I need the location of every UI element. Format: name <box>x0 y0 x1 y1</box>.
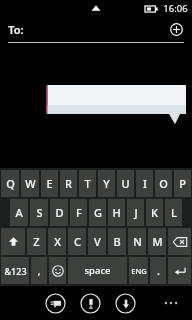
staticText: Z <box>33 234 40 249</box>
button[interactable]: S <box>30 199 48 226</box>
staticText: N <box>133 234 142 249</box>
staticText: L <box>171 205 177 220</box>
staticText: G <box>94 205 102 220</box>
staticText: H <box>112 205 121 220</box>
button[interactable]: Z <box>27 228 46 255</box>
staticText: I <box>143 176 147 191</box>
button[interactable]: Backspace <box>168 228 191 255</box>
staticText: P <box>179 176 186 191</box>
staticText: C <box>74 234 81 249</box>
staticText: S <box>36 205 43 220</box>
button[interactable]: Emoji <box>49 257 66 284</box>
button[interactable]: A <box>10 199 28 226</box>
button[interactable]: , <box>31 257 47 284</box>
button[interactable]: D <box>50 199 68 226</box>
staticText: V <box>94 234 101 249</box>
button[interactable]: W <box>21 170 39 197</box>
button[interactable]: V <box>88 228 106 255</box>
button[interactable]: Shift <box>1 228 25 255</box>
button[interactable] <box>46 85 186 125</box>
button[interactable]: &123 <box>1 257 29 284</box>
button[interactable]: Q <box>1 170 19 197</box>
staticText: ENG <box>131 266 147 276</box>
button[interactable]: C <box>68 228 86 255</box>
button[interactable]: I <box>136 170 153 197</box>
staticText: . <box>157 263 160 278</box>
staticText: O <box>159 176 168 191</box>
button[interactable]: F <box>70 199 87 226</box>
staticText: F <box>76 205 82 220</box>
button[interactable]: Add recipient <box>166 19 186 39</box>
button[interactable]: R <box>60 170 77 197</box>
button[interactable]: E <box>41 170 58 197</box>
button[interactable]: Enter <box>168 257 191 284</box>
button[interactable]: To: <box>0 16 192 42</box>
staticText: R <box>65 176 72 191</box>
staticText: space <box>84 264 111 277</box>
staticText: To: <box>8 22 24 37</box>
button[interactable]: O <box>155 170 172 197</box>
button[interactable]: M <box>148 228 166 255</box>
staticText: U <box>121 176 130 191</box>
button[interactable]: L <box>165 199 182 226</box>
button[interactable]: Y <box>98 170 115 197</box>
staticText: J <box>134 205 138 220</box>
button[interactable]: K <box>146 199 163 226</box>
button[interactable]: B <box>108 228 126 255</box>
staticText: M <box>152 234 163 249</box>
button[interactable]: Send <box>80 293 101 314</box>
button[interactable]: space <box>68 257 127 284</box>
button[interactable]: Attach <box>45 293 66 314</box>
staticText: Q <box>6 176 15 191</box>
staticText: W <box>25 176 36 191</box>
button[interactable]: X <box>48 228 66 255</box>
button[interactable]: J <box>127 199 144 226</box>
button[interactable]: H <box>108 199 125 226</box>
button[interactable]: . <box>150 257 166 284</box>
button[interactable]: N <box>128 228 146 255</box>
staticText: T <box>84 176 91 191</box>
button[interactable]: More options <box>160 293 182 313</box>
button[interactable]: P <box>174 170 191 197</box>
button[interactable]: ENG <box>129 257 148 284</box>
staticText: X <box>54 234 61 249</box>
staticText: D <box>55 205 64 220</box>
staticText: Y <box>103 176 110 191</box>
staticText: K <box>151 205 158 220</box>
button[interactable]: U <box>117 170 134 197</box>
staticText: , <box>37 263 41 278</box>
button[interactable]: Voice <box>115 293 136 314</box>
staticText: &123 <box>4 265 27 277</box>
staticText: A <box>15 205 23 220</box>
staticText: B <box>113 234 121 249</box>
staticText: E <box>46 176 53 191</box>
button[interactable]: T <box>79 170 96 197</box>
staticText: 16:06 <box>163 2 188 15</box>
button[interactable]: G <box>89 199 106 226</box>
